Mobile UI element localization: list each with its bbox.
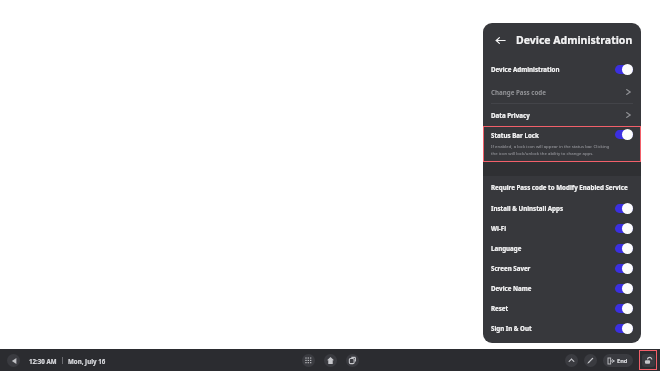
button[interactable]: Wi-Fi [483, 218, 641, 238]
staticText: 12:30 AM [29, 357, 57, 365]
button[interactable]: End [603, 354, 633, 367]
button[interactable]: Device Administration [483, 57, 641, 81]
button[interactable]: Annotate [584, 354, 597, 367]
button[interactable]: Data Privacy [483, 104, 641, 126]
staticText: Wi-Fi [491, 224, 507, 232]
button[interactable]: Back [491, 31, 509, 49]
button[interactable]: Home [324, 354, 337, 367]
staticText: Data Privacy [491, 111, 530, 119]
button[interactable]: Device Name [483, 278, 641, 298]
staticText: Status Bar Lock [491, 131, 539, 139]
button[interactable]: All apps [302, 354, 315, 367]
button[interactable]: Sign In & Out [483, 318, 641, 338]
staticText: the icon will lock/unlock the ability to… [491, 150, 594, 156]
staticText: End [617, 357, 628, 365]
button[interactable]: Change Pass code [483, 81, 641, 103]
staticText: Mon, July 16 [68, 357, 106, 365]
staticText: Sign In & Out [491, 324, 532, 332]
staticText: Require Pass code to Modify Enabled Serv… [491, 183, 628, 191]
button[interactable]: Screen Saver [483, 258, 641, 278]
button[interactable]: Expand [565, 354, 578, 367]
staticText: Reset [491, 304, 509, 312]
button[interactable]: Back [7, 354, 20, 367]
staticText: Change Pass code [491, 88, 546, 96]
button[interactable]: Recents [346, 354, 359, 367]
staticText: Device Administration [491, 65, 560, 73]
button[interactable]: Reset [483, 298, 641, 318]
button[interactable]: Lock [639, 350, 657, 370]
button[interactable]: Install & Uninstall Apps [483, 198, 641, 218]
staticText: Install & Uninstall Apps [491, 204, 564, 212]
staticText: Screen Saver [491, 264, 531, 272]
staticText: Device Administration [516, 33, 633, 47]
button[interactable]: Status Bar Lock [483, 126, 641, 162]
staticText: Language [491, 244, 522, 252]
staticText: Device Name [491, 284, 532, 292]
staticText: If enabled, a lock icon will appear in t… [491, 143, 610, 149]
button[interactable]: Language [483, 238, 641, 258]
